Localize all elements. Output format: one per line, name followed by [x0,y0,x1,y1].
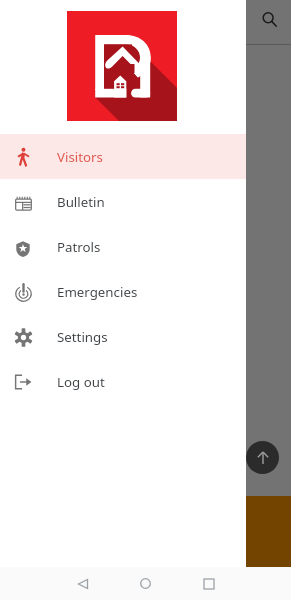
button[interactable]: Home [129,567,162,600]
staticText: Bulletin [57,193,105,211]
button[interactable]: Patrols [0,224,246,269]
staticText: Settings [57,328,108,346]
button[interactable]: Visitors [0,134,246,179]
staticText: Patrols [57,238,101,256]
button[interactable]: Bulletin [0,179,246,224]
button[interactable]: Settings [0,314,246,359]
button[interactable]: Recents [192,567,225,600]
staticText: Log out [57,373,105,391]
button[interactable]: Emergencies [0,269,246,314]
staticText: Visitors [57,148,103,166]
button[interactable]: Back [66,567,99,600]
button[interactable]: Log out [0,359,246,404]
button[interactable]: Search [255,5,283,33]
staticText: Emergencies [57,283,138,301]
button[interactable]: Scroll to top [246,441,279,474]
